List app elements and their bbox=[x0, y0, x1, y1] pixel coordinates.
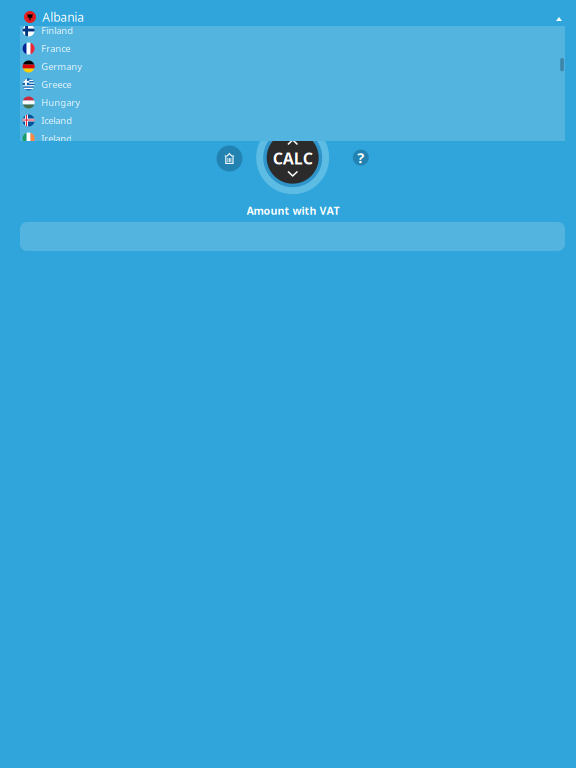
staticText: Hungary bbox=[41, 96, 80, 109]
button[interactable]: CALC bbox=[256, 121, 329, 194]
staticText: Greece bbox=[41, 78, 71, 91]
button[interactable]: Germany bbox=[20, 57, 565, 75]
button[interactable]: Hungary bbox=[20, 93, 565, 111]
staticText: CALC bbox=[273, 148, 313, 169]
staticText: Germany bbox=[41, 60, 82, 73]
staticText: Albania bbox=[42, 9, 84, 25]
button[interactable]: Ireland bbox=[20, 129, 565, 147]
button[interactable]: Collapse country list bbox=[549, 9, 569, 29]
button[interactable]: Clear bbox=[216, 145, 242, 171]
staticText: Iceland bbox=[41, 114, 72, 127]
button[interactable]: France bbox=[20, 39, 565, 57]
button[interactable]: Albania bbox=[0, 0, 540, 34]
staticText: Ireland bbox=[41, 132, 72, 145]
staticText: Finland bbox=[41, 24, 73, 37]
button[interactable]: Greece bbox=[20, 75, 565, 93]
staticText: Amount with VAT bbox=[246, 203, 339, 218]
staticText: ? bbox=[357, 148, 364, 167]
button[interactable]: Help bbox=[353, 150, 369, 166]
button[interactable]: Iceland bbox=[20, 111, 565, 129]
button[interactable]: Finland bbox=[20, 21, 565, 39]
staticText: France bbox=[41, 42, 70, 55]
